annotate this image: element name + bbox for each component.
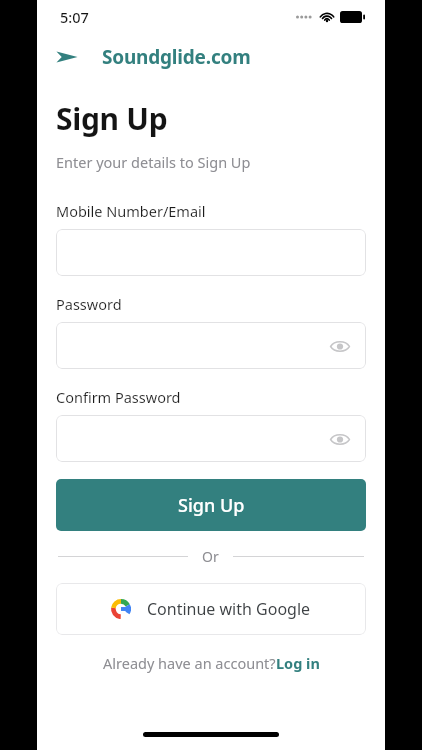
button[interactable]: Log in [276,653,320,673]
button[interactable]: Toggle password visibility [56,322,366,369]
button[interactable]: Sign Up [56,479,366,531]
staticText: Mobile Number/Email [56,201,206,221]
staticText: Continue with Google [147,598,311,620]
staticText: Enter your details to Sign Up [56,152,251,172]
staticText: Password [56,294,122,314]
button[interactable] [56,229,366,276]
button[interactable]: Toggle password visibility [328,427,352,451]
staticText: Log in [276,653,320,673]
staticText: Or [202,547,219,566]
staticText: 5:07 [60,7,89,27]
staticText: Sign Up [56,98,168,139]
staticText: Confirm Password [56,387,181,407]
button[interactable]: Continue with Google [56,583,366,635]
staticText: Already have an account? [103,653,276,673]
button[interactable]: Toggle password visibility [56,415,366,462]
staticText: Soundglide.com [102,44,251,70]
button[interactable]: Toggle password visibility [328,334,352,358]
staticText: Sign Up [178,493,245,518]
